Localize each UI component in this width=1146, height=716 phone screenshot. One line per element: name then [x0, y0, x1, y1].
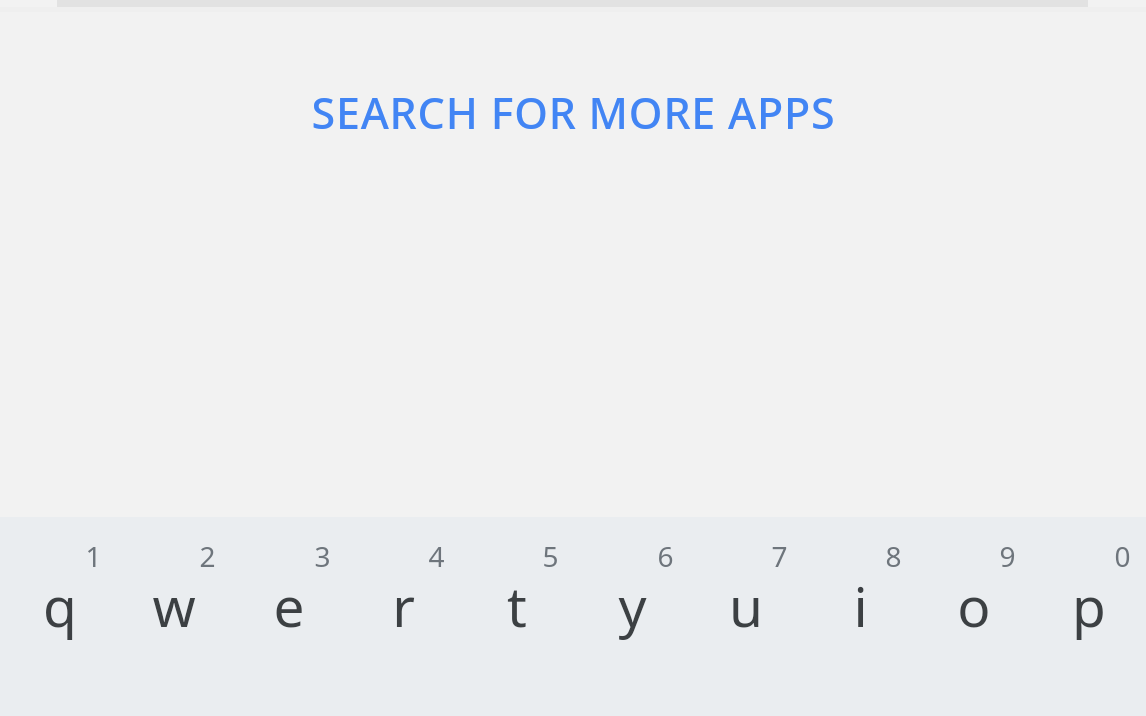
staticText: SEARCH FOR MORE APPS: [311, 83, 836, 142]
button[interactable]: y: [574, 517, 688, 716]
button[interactable]: t: [460, 517, 574, 716]
button[interactable]: r: [346, 517, 460, 716]
staticText: 8: [885, 537, 902, 571]
staticText: 4: [428, 537, 445, 571]
button[interactable]: q: [3, 517, 117, 716]
staticText: r: [392, 568, 415, 643]
staticText: e: [273, 568, 305, 643]
staticText: u: [729, 568, 763, 643]
staticText: 3: [314, 537, 331, 571]
staticText: t: [507, 568, 527, 643]
staticText: w: [152, 568, 196, 643]
staticText: 1: [85, 537, 102, 571]
staticText: o: [957, 568, 991, 643]
button[interactable]: p: [1032, 517, 1146, 716]
button[interactable]: w: [117, 517, 231, 716]
staticText: q: [43, 568, 77, 643]
staticText: i: [853, 568, 868, 643]
button[interactable]: i: [803, 517, 917, 716]
staticText: 9: [999, 537, 1016, 571]
staticText: p: [1072, 568, 1106, 643]
staticText: 0: [1114, 537, 1131, 571]
button[interactable]: o: [917, 517, 1031, 716]
staticText: 5: [542, 537, 559, 571]
staticText: 6: [657, 537, 674, 571]
staticText: 2: [199, 537, 216, 571]
staticText: y: [618, 568, 647, 643]
button[interactable]: SEARCH FOR MORE APPS: [0, 71, 1146, 153]
button[interactable]: e: [231, 517, 345, 716]
staticText: 7: [771, 537, 788, 571]
button[interactable]: u: [689, 517, 803, 716]
